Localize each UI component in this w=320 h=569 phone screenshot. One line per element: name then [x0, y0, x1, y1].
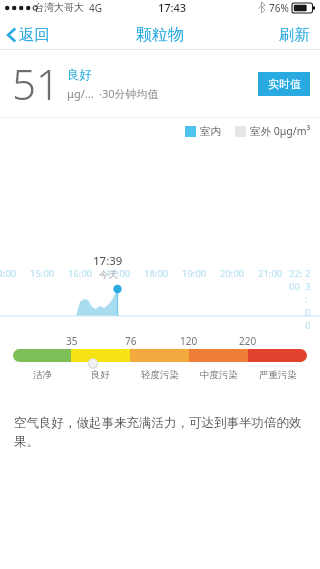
staticText: 严重污染 — [259, 369, 297, 381]
staticText: 17:39 — [93, 253, 123, 269]
staticText: 51 — [12, 55, 60, 112]
button[interactable]: 实时值 — [258, 72, 310, 96]
staticText: 220 — [239, 334, 257, 348]
staticText: 台湾大哥大 — [34, 1, 84, 14]
staticText: 14:00 — [0, 267, 17, 280]
staticText: 室内 — [200, 125, 221, 138]
staticText: μg/... — [67, 86, 94, 101]
staticText: 76% — [269, 1, 289, 15]
staticText: 15:00 — [30, 267, 55, 280]
staticText: 返回 — [19, 25, 50, 45]
staticText: 120 — [180, 334, 198, 348]
staticText: 20:00 — [220, 267, 245, 280]
staticText: 实时值 — [268, 77, 301, 91]
staticText: 35 — [66, 334, 78, 348]
staticText: 4G — [89, 1, 102, 15]
staticText: 良好 — [67, 67, 92, 83]
staticText: 19:00 — [182, 267, 207, 280]
staticText: 17:43 — [158, 0, 187, 15]
button[interactable]: 返回 — [0, 25, 58, 45]
staticText: 18:00 — [144, 267, 169, 280]
staticText: 洁净 — [33, 369, 52, 381]
staticText: 21:00 — [258, 267, 283, 280]
staticText: 17:00 — [106, 267, 131, 280]
staticText: 颗粒物 — [136, 25, 184, 45]
staticText: 空气良好，做起事来充满活力，可达到事半功倍的效果。 — [14, 415, 306, 450]
staticText: 中度污染 — [200, 369, 238, 381]
staticText: 今天 — [99, 269, 118, 281]
staticText: 良好 — [91, 369, 110, 381]
staticText: ·30分钟均值 — [99, 86, 159, 101]
staticText: 室外 0μg/m³ — [250, 124, 311, 138]
staticText: 76 — [125, 334, 137, 348]
button[interactable]: 刷新 — [269, 25, 320, 45]
staticText: 16:00 — [68, 267, 93, 280]
staticText: 轻度污染 — [141, 369, 179, 381]
staticText: 22:00 — [289, 267, 305, 293]
